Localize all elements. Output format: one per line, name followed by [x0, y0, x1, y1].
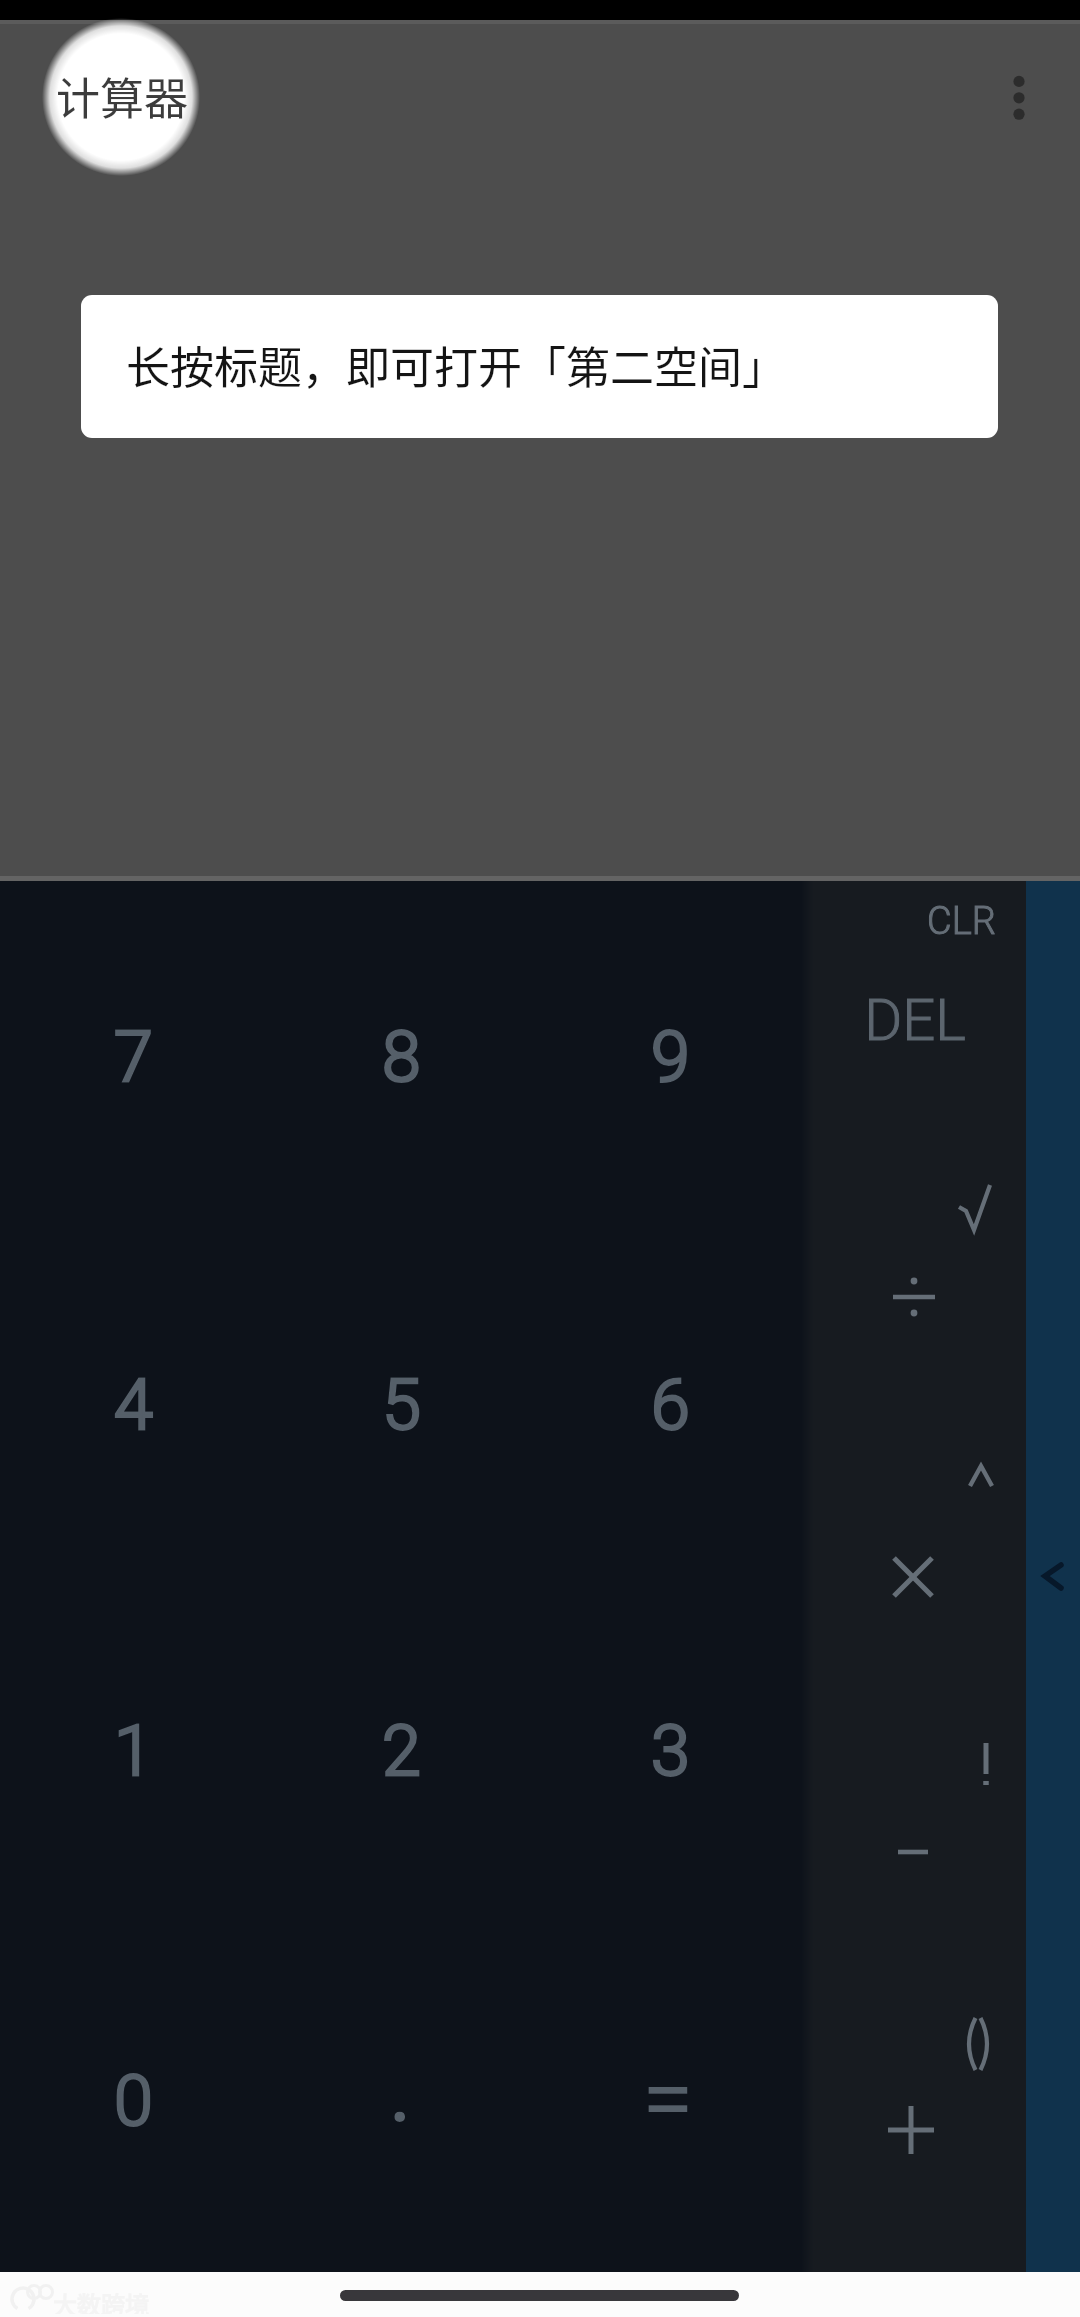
staticText: 2: [382, 1710, 421, 1792]
staticText: CLR: [927, 899, 996, 944]
button[interactable]: 计算器: [42, 16, 202, 176]
staticText: DEL: [864, 986, 966, 1054]
staticText: =: [643, 2047, 693, 2152]
button[interactable]: Factorial: [886, 1694, 1080, 1834]
button[interactable]: .: [300, 2016, 500, 2156]
staticText: 3: [651, 1710, 690, 1792]
staticText: 0: [114, 2060, 153, 2142]
staticText: 9: [651, 1016, 690, 1098]
button[interactable]: More options: [975, 40, 1063, 156]
button[interactable]: DEL: [815, 950, 1015, 1090]
staticText: 6: [651, 1364, 690, 1446]
staticText: 大数跨境: [53, 2286, 149, 2314]
button[interactable]: 6: [570, 1335, 770, 1475]
button[interactable]: Divide: [814, 1227, 1014, 1367]
staticText: .: [388, 2025, 413, 2147]
button[interactable]: =: [568, 2029, 768, 2169]
button[interactable]: Power: [881, 1406, 1080, 1546]
button[interactable]: 9: [570, 987, 770, 1127]
staticText: 4: [114, 1364, 153, 1446]
staticText: DEL: [864, 986, 966, 1054]
button[interactable]: Multiply: [813, 1507, 1013, 1647]
staticText: 7: [114, 1016, 153, 1098]
button[interactable]: 8: [301, 987, 501, 1127]
staticText: .: [388, 2025, 413, 2147]
staticText: 3: [651, 1710, 690, 1792]
staticText: 9: [651, 1016, 690, 1098]
staticText: CLR: [927, 899, 996, 944]
staticText: 8: [382, 1016, 421, 1098]
staticText: =: [643, 2047, 693, 2152]
button[interactable]: 7: [33, 987, 233, 1127]
button[interactable]: Collapse panel: [1026, 1530, 1080, 1622]
staticText: 计算器: [56, 64, 188, 128]
button[interactable]: Minus: [813, 1782, 1013, 1922]
button[interactable]: CLR: [861, 851, 1061, 991]
button[interactable]: 1: [33, 1681, 233, 1821]
button[interactable]: Plus: [811, 2060, 1011, 2200]
staticText: 5: [382, 1364, 421, 1446]
staticText: 4: [114, 1364, 153, 1446]
button[interactable]: 3: [570, 1681, 770, 1821]
staticText: 1: [114, 1710, 153, 1792]
staticText: 2: [382, 1710, 421, 1792]
staticText: 长按标题，即可打开「第二空间」: [126, 333, 786, 397]
staticText: 1: [114, 1710, 153, 1792]
button[interactable]: Parentheses: [878, 1974, 1078, 2114]
button[interactable]: 5: [301, 1335, 501, 1475]
button[interactable]: 2: [301, 1681, 501, 1821]
button[interactable]: 长按标题，即可打开「第二空间」: [81, 295, 998, 438]
button[interactable]: 4: [33, 1335, 233, 1475]
staticText: 0: [114, 2060, 153, 2142]
button[interactable]: 0: [33, 2031, 233, 2171]
staticText: 6: [651, 1364, 690, 1446]
staticText: 5: [382, 1364, 421, 1446]
button[interactable]: Square root: [875, 1138, 1075, 1278]
staticText: 7: [114, 1016, 153, 1098]
staticText: 8: [382, 1016, 421, 1098]
